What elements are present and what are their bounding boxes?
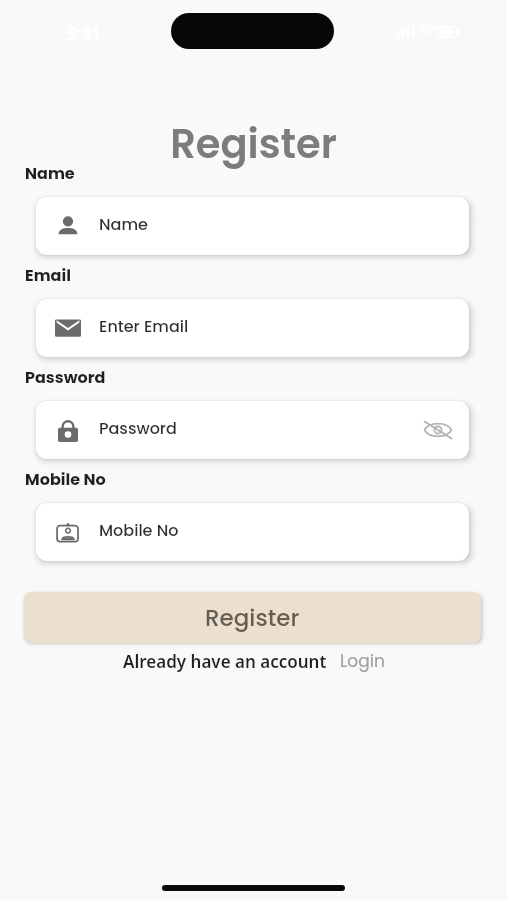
staticText: Mobile No — [25, 468, 106, 490]
button[interactable]: Show password — [421, 413, 455, 447]
button[interactable]: Register — [24, 592, 481, 643]
staticText: Password — [25, 366, 106, 388]
staticText: Name — [99, 213, 148, 235]
staticText: Enter Email — [99, 315, 189, 337]
staticText: Email — [25, 264, 71, 286]
staticText: Login — [340, 649, 385, 673]
staticText: Already have an account — [123, 650, 327, 673]
staticText: Password — [99, 417, 177, 439]
staticText: Register — [205, 602, 300, 634]
button[interactable]: Name — [36, 197, 469, 255]
staticText: Name — [25, 162, 75, 184]
button[interactable]: Password — [36, 401, 469, 459]
button[interactable]: Mobile No — [36, 503, 469, 561]
staticText: Mobile No — [99, 519, 179, 541]
button[interactable]: Login — [340, 649, 385, 673]
button[interactable]: Enter Email — [36, 299, 469, 357]
staticText: Register — [0, 116, 507, 172]
